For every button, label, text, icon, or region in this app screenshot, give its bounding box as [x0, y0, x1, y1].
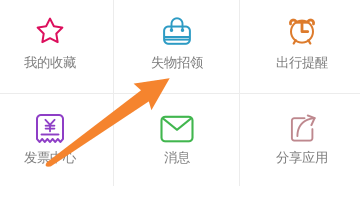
staticText: 失物招领 [151, 54, 203, 71]
staticText: 发票中心 [24, 149, 76, 166]
staticText: 我的收藏 [24, 54, 76, 71]
staticText: 消息 [164, 149, 190, 166]
staticText: 分享应用 [276, 149, 328, 166]
staticText: 出行提醒 [276, 54, 328, 71]
